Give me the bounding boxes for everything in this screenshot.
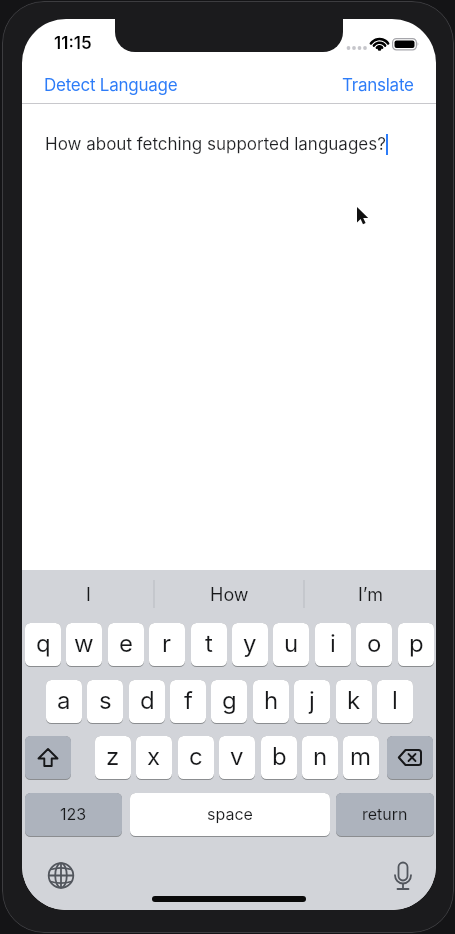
staticText: v — [230, 742, 244, 771]
staticText: k — [347, 686, 361, 715]
staticText: I — [86, 584, 91, 606]
button[interactable]: y — [232, 623, 268, 666]
button[interactable]: r — [149, 623, 185, 666]
button[interactable]: return — [336, 793, 434, 836]
button[interactable]: Detect Language — [44, 75, 178, 96]
staticText: n — [313, 742, 328, 771]
button[interactable]: l — [377, 680, 413, 723]
staticText: return — [362, 804, 408, 823]
button[interactable]: space — [130, 793, 330, 836]
staticText: o — [367, 629, 382, 658]
staticText: w — [74, 629, 94, 658]
button[interactable]: s — [87, 680, 123, 723]
staticText: d — [140, 686, 155, 715]
staticText: p — [409, 629, 424, 658]
button[interactable]: x — [136, 736, 172, 779]
staticText: 123 — [60, 804, 87, 823]
button[interactable]: o — [356, 623, 392, 666]
staticText: space — [207, 804, 253, 823]
staticText: Detect Language — [44, 75, 178, 96]
button[interactable]: z — [95, 736, 131, 779]
staticText: y — [243, 629, 257, 658]
staticText: j — [309, 686, 315, 715]
staticText: e — [119, 629, 133, 658]
button[interactable]: f — [170, 680, 206, 723]
staticText: a — [57, 686, 71, 715]
button[interactable]: u — [273, 623, 309, 666]
staticText: x — [147, 742, 161, 771]
button[interactable]: I’m — [304, 575, 436, 615]
button[interactable] — [389, 861, 417, 891]
button[interactable]: e — [108, 623, 144, 666]
button[interactable]: v — [219, 736, 255, 779]
staticText: c — [189, 742, 203, 771]
staticText: m — [350, 742, 372, 771]
staticText: I’m — [358, 584, 383, 606]
staticText: b — [272, 742, 287, 771]
button[interactable]: c — [178, 736, 214, 779]
button[interactable]: m — [343, 736, 379, 779]
button[interactable]: How — [154, 575, 304, 615]
staticText: l — [392, 686, 398, 715]
button[interactable]: p — [398, 623, 434, 666]
staticText: q — [36, 629, 51, 658]
button[interactable] — [25, 736, 71, 779]
button[interactable]: g — [211, 680, 247, 723]
staticText: How — [210, 584, 249, 606]
staticText: 11:15 — [54, 33, 92, 54]
staticText: u — [284, 629, 299, 658]
button[interactable]: q — [25, 623, 61, 666]
button[interactable]: k — [336, 680, 372, 723]
button[interactable]: Translate — [342, 75, 414, 96]
staticText: h — [264, 686, 279, 715]
button[interactable] — [47, 861, 75, 889]
staticText: g — [222, 686, 237, 715]
button[interactable]: h — [253, 680, 289, 723]
staticText: t — [205, 629, 213, 658]
button[interactable]: I — [22, 575, 154, 615]
staticText: f — [184, 686, 193, 715]
button[interactable]: n — [302, 736, 338, 779]
staticText: s — [99, 686, 112, 715]
button[interactable]: j — [294, 680, 330, 723]
button[interactable]: a — [46, 680, 82, 723]
button[interactable]: t — [191, 623, 227, 666]
staticText: r — [162, 629, 172, 658]
button[interactable]: d — [129, 680, 165, 723]
button[interactable]: b — [261, 736, 297, 779]
button[interactable]: w — [66, 623, 102, 666]
staticText: i — [330, 629, 336, 658]
staticText: z — [106, 742, 120, 771]
button[interactable] — [387, 736, 433, 779]
button[interactable]: 123 — [25, 793, 122, 836]
staticText: Translate — [342, 75, 414, 96]
button[interactable]: i — [315, 623, 351, 666]
staticText: How about fetching supported languages? — [45, 134, 386, 155]
